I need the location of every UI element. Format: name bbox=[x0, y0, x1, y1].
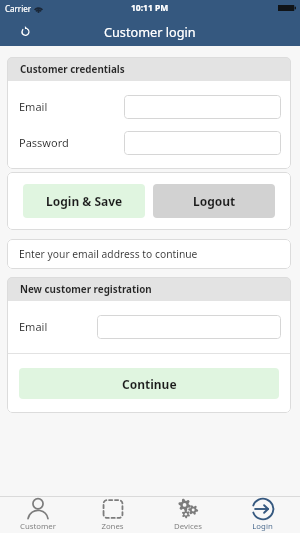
button[interactable]: Continue bbox=[19, 368, 279, 399]
button[interactable]: Login bbox=[225, 497, 300, 533]
staticText: New customer registration bbox=[20, 283, 152, 296]
staticText: Continue bbox=[122, 376, 177, 392]
staticText: Devices bbox=[174, 521, 202, 532]
staticText: Email bbox=[19, 99, 48, 114]
staticText: Customer credentials bbox=[20, 63, 125, 76]
staticText: Carrier bbox=[5, 3, 32, 14]
button[interactable] bbox=[124, 95, 281, 119]
staticText: Enter your email address to continue bbox=[19, 247, 198, 261]
staticText: Password bbox=[19, 135, 69, 150]
button[interactable]: Refresh bbox=[12, 18, 38, 44]
staticText: 10:11 PM bbox=[131, 2, 169, 14]
staticText: Login bbox=[252, 521, 273, 532]
button[interactable] bbox=[124, 131, 281, 155]
staticText: Zones bbox=[101, 521, 124, 532]
button[interactable] bbox=[97, 315, 281, 339]
staticText: Email bbox=[19, 319, 48, 334]
staticText: Login & Save bbox=[46, 193, 123, 209]
button[interactable]: Customer bbox=[0, 497, 75, 533]
button[interactable]: Devices bbox=[150, 497, 225, 533]
button[interactable]: Logout bbox=[153, 184, 275, 218]
staticText: Customer login bbox=[104, 23, 196, 40]
staticText: Customer bbox=[20, 521, 56, 532]
staticText: Logout bbox=[193, 193, 236, 209]
button[interactable]: Zones bbox=[75, 497, 150, 533]
button[interactable]: Login & Save bbox=[23, 184, 145, 218]
